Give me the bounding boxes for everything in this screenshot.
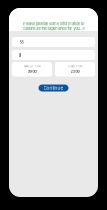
staticText: Continue <box>43 85 63 91</box>
button[interactable]: Sleep Time <box>55 62 95 76</box>
staticText: 55 <box>19 40 23 44</box>
staticText: Wake Up Time <box>23 65 40 68</box>
staticText: Please provide some information to <box>23 21 84 26</box>
staticText: 09:00 <box>27 69 36 74</box>
button[interactable]: Continue <box>38 84 68 91</box>
staticText: Sleep Time <box>68 65 82 68</box>
staticText: customize the experience for you...!! <box>22 26 84 31</box>
staticText: 23:00 <box>70 69 79 74</box>
button[interactable]: Wake Up Time <box>12 62 52 76</box>
